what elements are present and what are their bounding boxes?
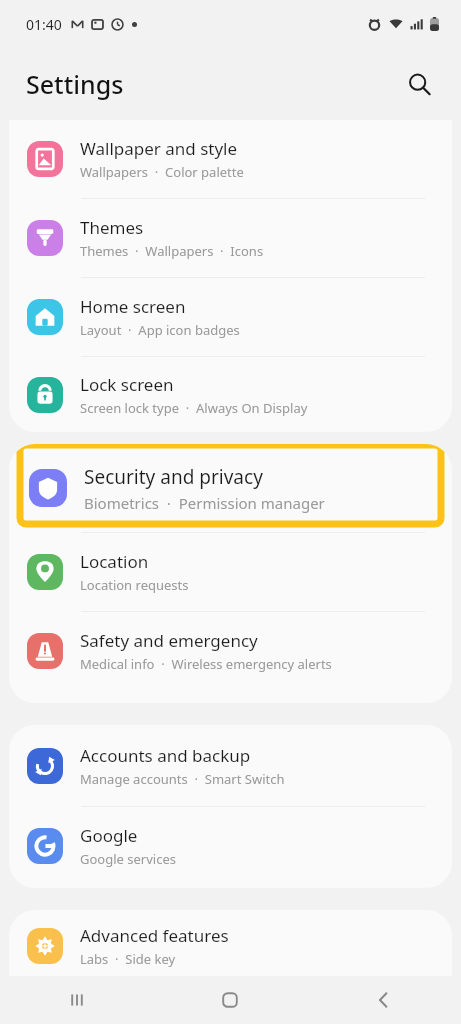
button[interactable]: Search [399, 64, 439, 104]
staticText: Security and privacy [84, 464, 263, 490]
button[interactable]: Home [153, 976, 307, 1024]
staticText: Screen lock type · Always On Display [80, 399, 308, 417]
staticText: Google services [80, 850, 176, 868]
staticText: 01:40 [26, 15, 62, 34]
button[interactable]: Location [9, 533, 452, 611]
button[interactable]: Wallpaper and style [9, 120, 452, 198]
staticText: Layout · App icon badges [80, 321, 240, 339]
staticText: Home screen [80, 295, 186, 318]
staticText: Biometrics · Permission manager [84, 493, 325, 513]
staticText: Google [80, 824, 138, 847]
staticText: Accounts and backup [80, 744, 251, 767]
staticText: Medical info · Wireless emergency alerts [80, 655, 332, 673]
staticText: Labs · Side key [80, 950, 176, 968]
button[interactable]: Home screen [9, 278, 452, 356]
button[interactable]: Recents [0, 976, 153, 1024]
staticText: Themes · Wallpapers · Icons [80, 242, 264, 260]
button[interactable]: Themes [9, 199, 452, 277]
button[interactable]: Advanced features [9, 910, 452, 982]
button[interactable]: Accounts and backup [9, 725, 452, 806]
staticText: Location requests [80, 576, 189, 594]
staticText: Wallpapers · Color palette [80, 163, 244, 181]
staticText: Lock screen [80, 373, 174, 396]
button[interactable]: Google [9, 807, 452, 885]
button[interactable]: Safety and emergency [9, 612, 452, 690]
staticText: Location [80, 550, 149, 573]
staticText: Wallpaper and style [80, 137, 238, 160]
staticText: Manage accounts · Smart Switch [80, 770, 285, 788]
button[interactable]: Security and privacy [9, 444, 452, 532]
staticText: Settings [26, 67, 124, 101]
button[interactable]: Back [307, 976, 461, 1024]
staticText: Themes [80, 216, 144, 239]
staticText: Safety and emergency [80, 629, 258, 652]
staticText: Advanced features [80, 924, 229, 947]
button[interactable]: Lock screen [9, 357, 452, 432]
